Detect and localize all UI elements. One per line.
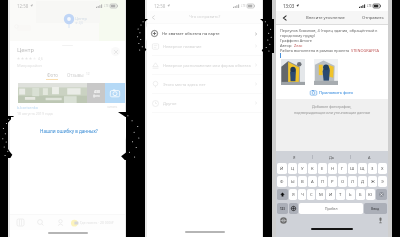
staticText: фото xyxy=(93,94,100,98)
button[interactable]: В xyxy=(298,176,307,187)
button[interactable]: Карта xyxy=(10,215,30,230)
button[interactable]: О xyxy=(338,176,347,187)
button[interactable]: Фото граффити xyxy=(314,59,338,85)
staticText: 123 xyxy=(280,207,285,211)
staticText: 18 августа 2019 года xyxy=(17,111,53,116)
button[interactable]: Неверное расположение или форма объекта xyxy=(147,56,262,74)
button[interactable]: Т xyxy=(336,189,345,200)
button[interactable]: Б xyxy=(356,189,365,200)
button[interactable]: К xyxy=(308,163,317,174)
button[interactable]: Ч xyxy=(298,189,306,200)
button[interactable]: Л xyxy=(348,176,357,187)
button[interactable]: Р xyxy=(328,176,337,187)
staticText: М xyxy=(319,192,323,198)
button[interactable]: Отзывы xyxy=(67,72,90,78)
button[interactable]: Где поесть · 20 000 ₽ xyxy=(70,215,125,230)
staticText: П xyxy=(321,179,325,185)
staticText: Ч xyxy=(301,192,304,198)
staticText: 12:58 xyxy=(17,3,29,9)
button[interactable]: Назад xyxy=(147,11,159,23)
staticText: Х xyxy=(381,166,384,172)
button[interactable]: Ж xyxy=(368,176,377,187)
staticText: Неверное название xyxy=(163,44,254,49)
staticText: А xyxy=(368,155,371,160)
staticText: Н xyxy=(331,166,335,172)
button[interactable]: Выбрать язык xyxy=(280,217,287,224)
button[interactable]: Этого места здесь нет xyxy=(147,75,262,93)
button[interactable]: Неверное название xyxy=(147,37,262,55)
button[interactable]: Пробел xyxy=(299,203,363,214)
button[interactable]: Отправить xyxy=(362,15,384,21)
staticText: STENOGRAFFIA xyxy=(351,48,380,53)
button[interactable]: М xyxy=(316,189,325,200)
button[interactable]: Э xyxy=(378,176,387,187)
staticText: Этого места здесь нет xyxy=(163,82,254,87)
button[interactable]: Е xyxy=(318,163,327,174)
button[interactable]: Ц xyxy=(288,163,297,174)
button[interactable]: З xyxy=(368,163,377,174)
button[interactable]: А xyxy=(351,151,388,163)
staticText: Е xyxy=(321,166,324,172)
button[interactable]: Ь xyxy=(346,189,355,200)
staticText: Ввод xyxy=(371,206,380,211)
button[interactable]: Х xyxy=(378,163,387,174)
staticText: Да xyxy=(329,155,334,160)
button[interactable]: Фото xyxy=(64,83,87,103)
button[interactable]: Д xyxy=(358,176,367,187)
button[interactable]: Ю xyxy=(366,189,375,200)
staticText: Ц xyxy=(291,166,295,172)
staticText: LTE xyxy=(367,4,372,8)
button[interactable]: С xyxy=(307,189,315,200)
staticText: Ю xyxy=(368,192,373,198)
staticText: Не хватает объекта на карте xyxy=(162,31,254,37)
button[interactable]: Н xyxy=(328,163,337,174)
button[interactable]: Да xyxy=(313,151,350,163)
button[interactable]: Диктовка xyxy=(377,217,384,224)
button[interactable]: Г xyxy=(338,163,347,174)
button[interactable]: Ш xyxy=(348,163,357,174)
button[interactable]: П xyxy=(318,176,327,187)
button[interactable]: Ввод xyxy=(364,203,387,214)
staticText: Микрорайон xyxy=(17,63,43,68)
staticText: ★ 4,6 xyxy=(75,21,84,25)
button[interactable] xyxy=(289,203,298,214)
button[interactable]: Нашли ошибку в данных? xyxy=(11,117,126,143)
button[interactable]: Щ xyxy=(358,163,367,174)
button[interactable]: Закрыть xyxy=(111,47,120,56)
staticText: Центр xyxy=(17,46,34,54)
staticText: У xyxy=(301,166,304,172)
staticText: Ж xyxy=(371,179,375,185)
staticText: Работа выполнена в рамках проекта xyxy=(280,48,351,53)
staticText: Что исправить? xyxy=(189,14,221,20)
staticText: Р xyxy=(331,179,334,185)
button[interactable]: Фото xyxy=(46,72,58,80)
staticText: Отправить xyxy=(362,15,384,21)
button[interactable]: Добавить фото xyxy=(105,83,125,103)
button[interactable]: У xyxy=(298,163,307,174)
staticText: 12 xyxy=(86,72,90,76)
button[interactable]: Й xyxy=(277,163,287,174)
button[interactable]: Ф xyxy=(277,176,287,187)
button[interactable]: Назад xyxy=(280,13,289,22)
staticText: Т xyxy=(339,192,342,198)
button[interactable]: 123 xyxy=(277,203,288,214)
button[interactable]: Приложить фото xyxy=(276,89,388,96)
staticText: 430 xyxy=(94,89,100,94)
button[interactable]: Фото xyxy=(41,83,64,103)
button[interactable]: Ы xyxy=(288,176,297,187)
button[interactable] xyxy=(277,189,288,200)
button[interactable]: Фото xyxy=(18,83,41,103)
button[interactable] xyxy=(376,189,387,200)
staticText: городскому пруду) xyxy=(280,33,316,38)
button[interactable]: Не хватает объекта на карте xyxy=(146,25,262,42)
staticText: Отзывы xyxy=(67,72,84,78)
staticText: читать xyxy=(107,105,118,109)
button[interactable]: Фото граффити xyxy=(281,59,305,85)
button[interactable]: Я xyxy=(276,151,312,163)
button[interactable]: А xyxy=(308,176,317,187)
button[interactable]: И xyxy=(326,189,335,200)
button[interactable]: Я xyxy=(289,189,297,200)
